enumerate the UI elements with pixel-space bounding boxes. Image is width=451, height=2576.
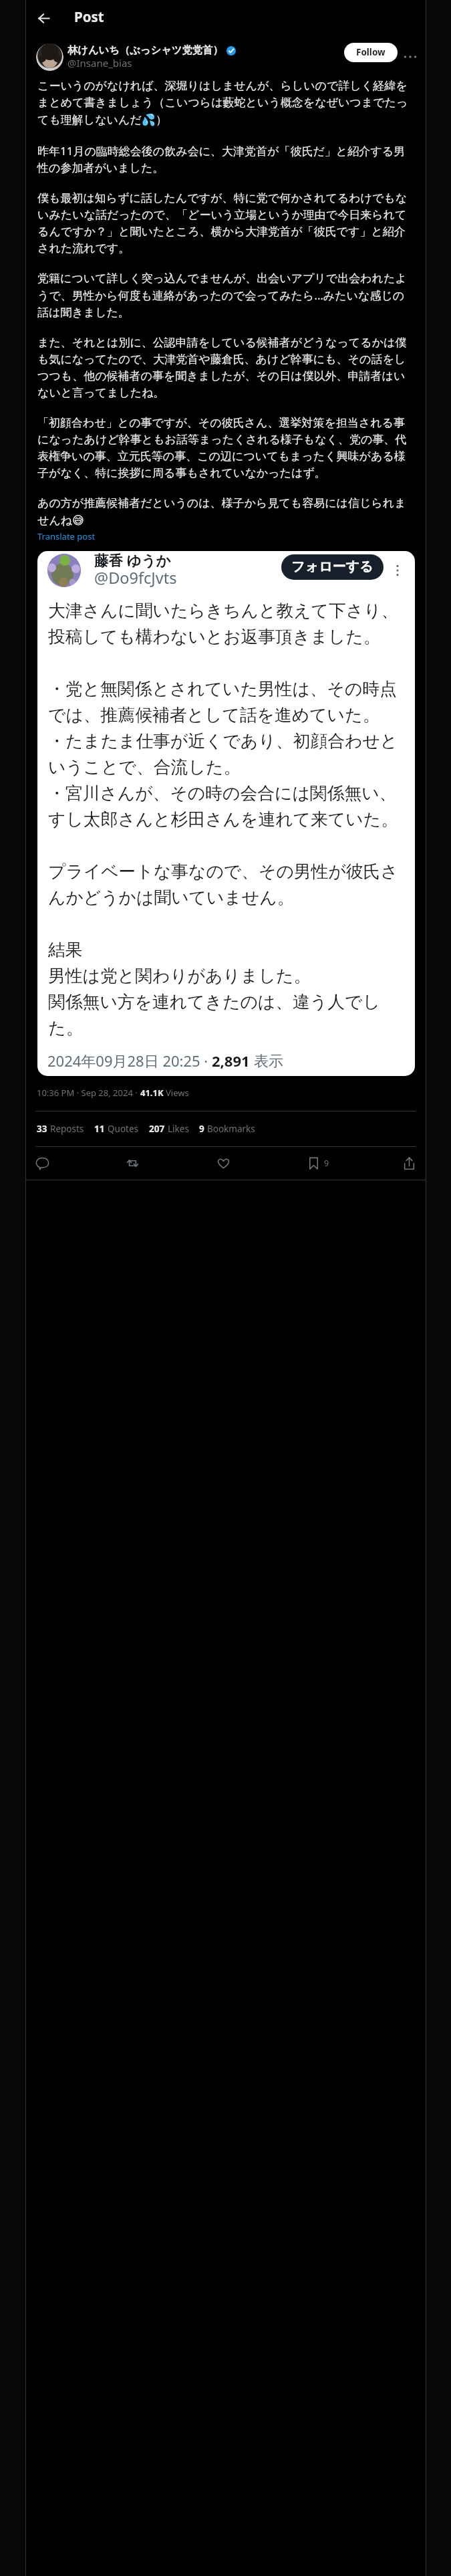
staticText: 藤香 ゆうか [94,554,171,570]
staticText: 10:36 PM · Sep 28, 2024 · [37,1087,140,1099]
button[interactable]: 9 [199,1123,255,1135]
staticText: いうことで、合流した。 [48,754,241,780]
staticText: あの方が推薦候補者だというのは、様子から見ても容易には信じられませんね😅 [37,494,416,529]
button[interactable]: Like [212,1152,234,1174]
button[interactable]: More options [388,560,408,580]
staticText: 41.1K [140,1087,166,1099]
staticText: 結果 [48,936,83,962]
button[interactable]: More options [397,43,424,70]
staticText: 2024年09月28日 20:25 · [47,1053,212,1071]
staticText: た。 [48,1014,84,1041]
staticText: 「初顔合わせ」との事ですが、その彼氏さん、選挙対策を担当される事になったあけど幹… [37,414,416,481]
button[interactable]: Share [398,1152,420,1174]
button[interactable]: Bookmark [303,1152,329,1174]
button[interactable]: 藤香 ゆうか [37,551,415,1076]
staticText: んかどうかは聞いていません。 [48,884,295,910]
button[interactable]: Back [31,6,55,30]
staticText: @Do9fcJvts [94,569,177,588]
staticText: また、それとは別に、公認申請をしている候補者がどうなってるかは僕も気になってたの… [37,334,416,401]
button[interactable]: Translate post [37,531,96,542]
staticText: 2,891 [212,1053,254,1071]
staticText: 207 [149,1123,165,1135]
button[interactable]: Follow [344,43,398,62]
staticText: Translate post [37,531,96,542]
staticText: Views [166,1087,189,1099]
button[interactable]: 207 [149,1123,189,1135]
button[interactable]: Post [74,9,104,25]
button[interactable]: フォローする [281,554,384,580]
staticText: Likes [168,1123,189,1135]
button[interactable]: 11 [94,1123,139,1135]
staticText: 大津さんに聞いたらきちんと教えて下さり、 [48,597,399,623]
button[interactable]: 10:36 PM · Sep 28, 2024 · [37,1087,189,1099]
staticText: では、推薦候補者として話を進めていた。 [48,702,380,728]
staticText: こーいうのがなければ、深堀りはしませんが、らしいので詳しく経緯をまとめて書きまし… [37,77,416,128]
staticText: 僕も最初は知らずに話したんですが、特に党で何かされてるわけでもないみたいな話だっ… [37,189,416,256]
staticText: 男性は党と関わりがありました。 [48,962,311,988]
staticText: 表示 [254,1053,283,1071]
staticText: ・宮川さんが、その時の会合には関係無い、 [48,780,397,806]
staticText: 33 [37,1123,47,1135]
staticText: 11 [94,1123,105,1135]
staticText: 林けんいち（ぶっシャツ党党首） [67,44,223,57]
staticText: 投稿しても構わないとお返事頂きました。 [48,623,381,649]
staticText: ・たまたま仕事が近くであり、初顔合わせと [48,728,398,754]
staticText: 関係無い方を連れてきたのは、違う人でし [48,988,380,1014]
button[interactable]: Repost [122,1152,143,1174]
staticText: 昨年11月の臨時総会後の飲み会に、大津党首が「彼氏だ」と紹介する男性の参加者がい… [37,142,416,176]
staticText: フォローする [291,559,373,575]
staticText: 党籍について詳しく突っ込んでませんが、出会いアプリで出会われたようで、男性から何… [37,270,416,320]
button[interactable]: 33 [37,1123,84,1135]
staticText: 9 [199,1123,204,1135]
staticText: Follow [356,47,386,58]
staticText: すし太郎さんと杉田さんを連れて来ていた。 [48,806,398,832]
staticText: 9 [324,1158,329,1168]
staticText: @Insane_bias [67,57,132,70]
staticText: Quotes [108,1123,139,1135]
button[interactable]: Reply [31,1152,53,1174]
staticText: Bookmarks [207,1123,255,1135]
staticText: Post [74,9,104,25]
staticText: ・党と無関係とされていた男性は、その時点 [48,675,397,702]
staticText: プライベートな事なので、その男性が彼氏さ [48,858,398,884]
staticText: Reposts [50,1123,84,1135]
